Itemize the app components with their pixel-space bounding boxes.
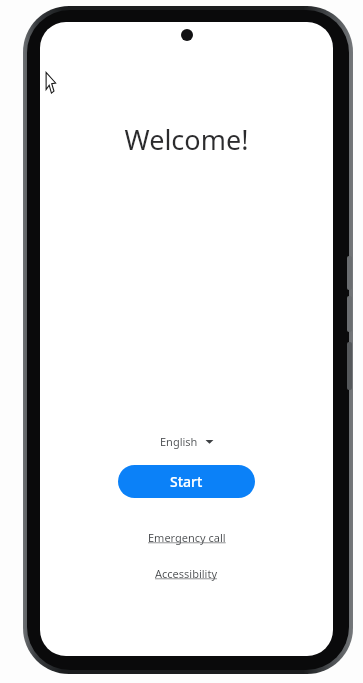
button[interactable]: English xyxy=(152,430,222,453)
staticText: Start xyxy=(170,472,203,491)
staticText: Emergency call xyxy=(148,530,226,545)
staticText: Accessibility xyxy=(155,566,218,581)
button[interactable]: Start xyxy=(118,465,255,498)
button[interactable]: Accessibility xyxy=(145,562,228,585)
staticText: Welcome! xyxy=(40,121,333,158)
staticText: English xyxy=(160,434,198,449)
button[interactable]: Emergency call xyxy=(138,526,236,549)
